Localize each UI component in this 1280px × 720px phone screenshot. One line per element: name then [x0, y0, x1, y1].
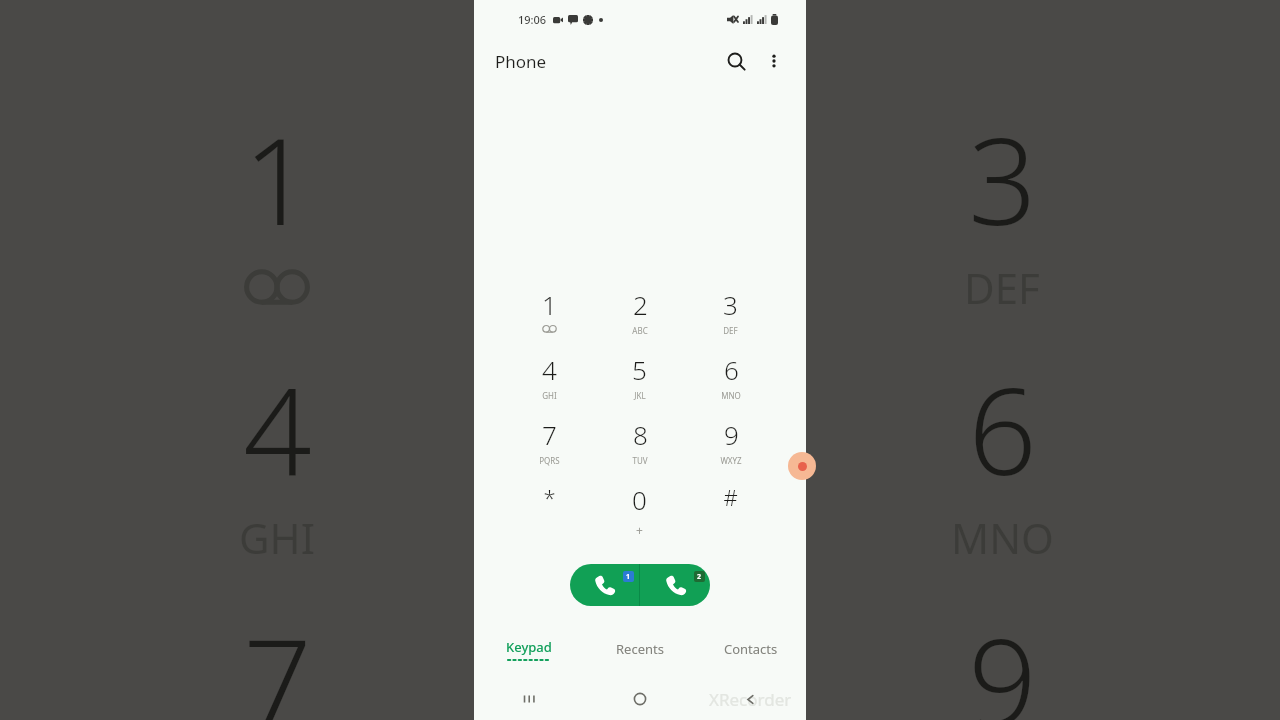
staticText: 6 [724, 352, 739, 387]
staticText: Contacts [724, 640, 778, 658]
staticText: Recents [616, 640, 664, 658]
staticText: 7 [243, 598, 312, 720]
staticText: 3 [723, 287, 738, 322]
staticText: 5 [632, 352, 647, 387]
staticText: * [543, 482, 556, 512]
button[interactable]: 7 [504, 412, 594, 477]
staticText: 1 [626, 572, 631, 582]
staticText: DEF [723, 325, 738, 336]
staticText: 6 [968, 347, 1037, 497]
button[interactable]: More options [756, 43, 792, 79]
staticText: 3 [968, 97, 1037, 247]
button[interactable]: Contacts [695, 634, 806, 664]
staticText: 9 [724, 417, 739, 452]
button[interactable]: * [504, 477, 594, 542]
button[interactable]: 5 [594, 347, 685, 412]
staticText: 9 [968, 598, 1037, 720]
staticText: 7 [542, 417, 557, 452]
button[interactable]: Search [716, 41, 756, 81]
staticText: + [636, 522, 643, 538]
staticText: 2 [633, 287, 648, 322]
staticText: PQRS [539, 455, 560, 466]
staticText: MNO [721, 390, 741, 401]
button[interactable]: Keypad [474, 634, 584, 664]
staticText: Keypad [506, 638, 552, 656]
staticText: WXYZ [720, 455, 742, 466]
staticText: 1 [542, 287, 557, 322]
button[interactable]: 1 [504, 282, 594, 347]
staticText: Phone [495, 50, 547, 73]
button[interactable]: 9 [685, 412, 776, 477]
staticText: GHI [542, 390, 557, 401]
staticText: 19:06 [518, 12, 547, 27]
staticText: # [723, 482, 738, 512]
button[interactable]: Home [584, 678, 695, 720]
button[interactable]: Call with SIM 1 [570, 564, 639, 606]
staticText: MNO [951, 509, 1054, 566]
button[interactable]: Call with SIM 2 [640, 564, 710, 606]
button[interactable]: # [685, 477, 776, 542]
button[interactable]: Recent apps [474, 678, 584, 720]
button[interactable]: 8 [594, 412, 685, 477]
staticText: XRecorder [709, 688, 792, 711]
staticText: 0 [632, 482, 647, 517]
staticText: 4 [243, 347, 312, 497]
button[interactable]: Recents [584, 634, 695, 664]
staticText: ABC [632, 325, 648, 336]
button[interactable]: 2 [594, 282, 685, 347]
staticText: 2 [697, 572, 702, 582]
button[interactable]: 4 [504, 347, 594, 412]
staticText: JKL [634, 390, 646, 401]
staticText: DEF [964, 259, 1040, 316]
staticText: GHI [239, 509, 315, 566]
button[interactable]: 3 [685, 282, 776, 347]
staticText: 1 [243, 97, 312, 247]
button[interactable]: 0 [594, 477, 685, 542]
button[interactable]: 6 [685, 347, 776, 412]
staticText: TUV [632, 455, 648, 466]
staticText: 8 [633, 417, 648, 452]
button[interactable]: Back [695, 678, 806, 720]
staticText: 4 [542, 352, 557, 387]
